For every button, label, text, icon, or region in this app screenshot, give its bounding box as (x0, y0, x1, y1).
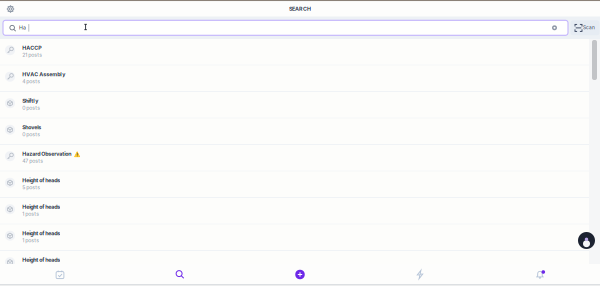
button[interactable]: Shiftly (0, 92, 589, 118)
staticText: 1 posts (22, 237, 39, 243)
button[interactable]: Height of heads (0, 171, 589, 198)
button[interactable]: Tasks (0, 264, 120, 285)
staticText: Height of heads (22, 257, 60, 263)
button[interactable]: Activity (360, 264, 480, 285)
staticText: Ha (19, 24, 26, 31)
button[interactable]: Height of heads (0, 251, 589, 277)
button[interactable]: Height of heads (0, 224, 589, 251)
staticText: Height of heads (22, 177, 60, 184)
staticText: 5 posts (22, 184, 40, 190)
staticText: HVAC Assembly (22, 71, 65, 78)
button[interactable]: Create (240, 264, 360, 285)
staticText: 0 posts (22, 105, 40, 111)
button[interactable]: Search (120, 264, 240, 285)
staticText: Shiftly (22, 98, 38, 104)
staticText: ⚠️ (74, 151, 80, 157)
staticText: Scan (583, 24, 595, 30)
staticText: SEARCH (289, 6, 311, 12)
button[interactable]: Height of heads (0, 198, 589, 224)
button[interactable]: Notifications (480, 264, 600, 285)
button[interactable]: Shovels (0, 118, 589, 145)
staticText: HACCP (22, 45, 41, 51)
staticText: 0 posts (22, 131, 40, 137)
button[interactable]: Scan (570, 20, 599, 35)
button[interactable]: Settings (3, 2, 17, 16)
staticText: Height of heads (22, 230, 60, 237)
staticText: 4 posts (22, 78, 40, 84)
staticText: Hazard Observation (22, 151, 71, 157)
button[interactable]: Hazard Observation (0, 145, 589, 171)
staticText: 1 posts (22, 211, 39, 217)
button[interactable]: Profile (578, 232, 595, 249)
staticText: 21 posts (22, 52, 42, 58)
staticText: Height of heads (22, 204, 60, 210)
staticText: Shovels (22, 124, 41, 131)
button[interactable]: Ha (3, 20, 568, 35)
button[interactable]: HVAC Assembly (0, 65, 589, 92)
staticText: 47 posts (22, 158, 43, 164)
button[interactable]: HACCP (0, 39, 589, 65)
